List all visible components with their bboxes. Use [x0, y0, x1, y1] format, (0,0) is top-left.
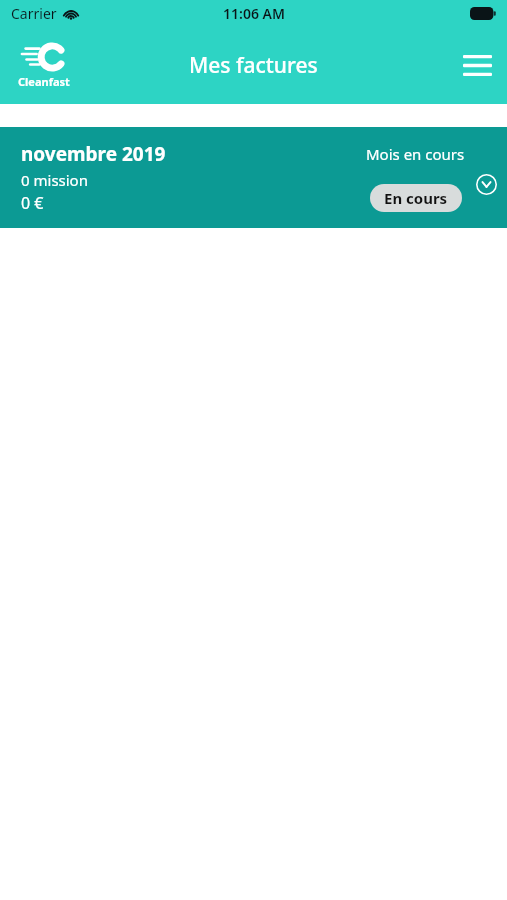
staticText: Cleanfast	[18, 74, 70, 89]
button[interactable]: novembre 2019	[0, 127, 507, 228]
staticText: En cours	[384, 188, 448, 208]
staticText: 0 mission	[21, 170, 88, 190]
staticText: novembre 2019	[21, 141, 166, 167]
staticText: Carrier	[11, 4, 57, 23]
staticText: Mes factures	[189, 51, 318, 80]
staticText: Mois en cours	[366, 144, 465, 164]
staticText: 11:06 AM	[223, 4, 285, 23]
staticText: 0 €	[21, 192, 44, 214]
button[interactable]: Cleanfast home	[14, 40, 74, 91]
button[interactable]: Expand month	[466, 164, 506, 204]
button[interactable]: En cours	[370, 184, 462, 212]
button[interactable]: Menu	[455, 43, 499, 87]
